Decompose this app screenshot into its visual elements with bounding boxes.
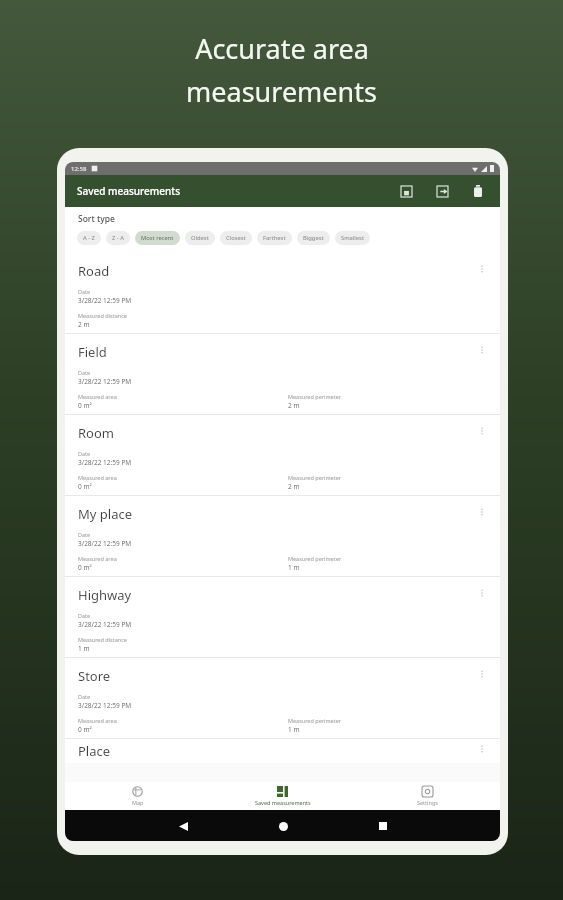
staticText: Date: [78, 288, 91, 295]
staticText: Date: [78, 612, 91, 619]
staticText: 12:58: [71, 165, 87, 173]
staticText: Measured perimeter: [288, 474, 342, 481]
staticText: 3/28/22 12:59 PM: [78, 539, 132, 548]
staticText: 2 m: [78, 320, 90, 329]
button[interactable]: Saved measurements: [210, 786, 355, 806]
button[interactable]: Place: [65, 739, 500, 763]
staticText: Saved measurements: [77, 184, 181, 198]
button[interactable]: Smallest: [335, 231, 370, 245]
staticText: 0 m²: [78, 482, 92, 491]
button[interactable]: Save: [396, 181, 416, 201]
staticText: Measured area: [78, 393, 117, 400]
staticText: Measured perimeter: [288, 717, 342, 724]
button[interactable]: Map: [65, 786, 210, 806]
button[interactable]: Settings: [355, 786, 500, 806]
button[interactable]: Store: [65, 658, 500, 739]
staticText: 3/28/22 12:59 PM: [78, 620, 132, 629]
staticText: Smallest: [341, 234, 364, 242]
staticText: Room: [78, 424, 114, 442]
staticText: Sort type: [78, 213, 115, 225]
staticText: 3/28/22 12:59 PM: [78, 701, 132, 710]
button[interactable]: More options: [474, 423, 490, 439]
staticText: Saved measurements: [255, 799, 311, 806]
staticText: Oldest: [191, 234, 209, 242]
button[interactable]: Delete: [468, 181, 488, 201]
button[interactable]: Highway: [65, 577, 500, 658]
staticText: 3/28/22 12:59 PM: [78, 377, 132, 386]
staticText: 3/28/22 12:59 PM: [78, 296, 132, 305]
button[interactable]: More options: [474, 261, 490, 277]
button[interactable]: Closest: [220, 231, 252, 245]
button[interactable]: Room: [65, 415, 500, 496]
button[interactable]: Back: [133, 814, 233, 838]
staticText: Z - A: [112, 234, 124, 242]
button[interactable]: More options: [474, 666, 490, 682]
staticText: Road: [78, 262, 110, 280]
staticText: Measured distance: [78, 636, 127, 643]
staticText: Measured area: [78, 555, 117, 562]
button[interactable]: More options: [474, 741, 490, 757]
staticText: Measured perimeter: [288, 393, 342, 400]
staticText: Store: [78, 667, 111, 685]
staticText: Measured distance: [78, 312, 127, 319]
staticText: Map: [132, 799, 144, 806]
staticText: Accurate area: [195, 30, 369, 67]
staticText: 1 m: [78, 644, 90, 653]
button[interactable]: More options: [474, 504, 490, 520]
staticText: Place: [78, 742, 111, 760]
button[interactable]: Z - A: [106, 231, 130, 245]
staticText: 0 m²: [78, 401, 92, 410]
staticText: Measured area: [78, 717, 117, 724]
staticText: Measured perimeter: [288, 555, 342, 562]
staticText: Field: [78, 343, 107, 361]
staticText: Date: [78, 369, 91, 376]
button[interactable]: Biggest: [297, 231, 330, 245]
staticText: 2 m: [288, 401, 300, 410]
staticText: Date: [78, 531, 91, 538]
button[interactable]: A - Z: [77, 231, 101, 245]
button[interactable]: Export: [432, 181, 452, 201]
staticText: Highway: [78, 586, 132, 604]
button[interactable]: Oldest: [185, 231, 215, 245]
staticText: Closest: [226, 234, 246, 242]
button[interactable]: More options: [474, 585, 490, 601]
staticText: Most recent: [141, 234, 174, 242]
staticText: 0 m²: [78, 563, 92, 572]
button[interactable]: Field: [65, 334, 500, 415]
button[interactable]: Most recent: [135, 231, 180, 245]
staticText: A - Z: [83, 234, 95, 242]
button[interactable]: Farthest: [257, 231, 292, 245]
staticText: measurements: [186, 73, 377, 110]
button[interactable]: Home: [233, 814, 333, 838]
button[interactable]: My place: [65, 496, 500, 577]
button[interactable]: Recents: [333, 814, 433, 838]
staticText: 1 m: [288, 563, 300, 572]
staticText: Date: [78, 450, 91, 457]
staticText: Farthest: [263, 234, 286, 242]
staticText: 2 m: [288, 482, 300, 491]
staticText: 0 m²: [78, 725, 92, 734]
staticText: 1 m: [288, 725, 300, 734]
button[interactable]: Road: [65, 253, 500, 334]
staticText: My place: [78, 505, 133, 523]
staticText: Settings: [417, 799, 438, 806]
staticText: Date: [78, 693, 91, 700]
staticText: Biggest: [303, 234, 324, 242]
staticText: 3/28/22 12:59 PM: [78, 458, 132, 467]
button[interactable]: More options: [474, 342, 490, 358]
staticText: Measured area: [78, 474, 117, 481]
